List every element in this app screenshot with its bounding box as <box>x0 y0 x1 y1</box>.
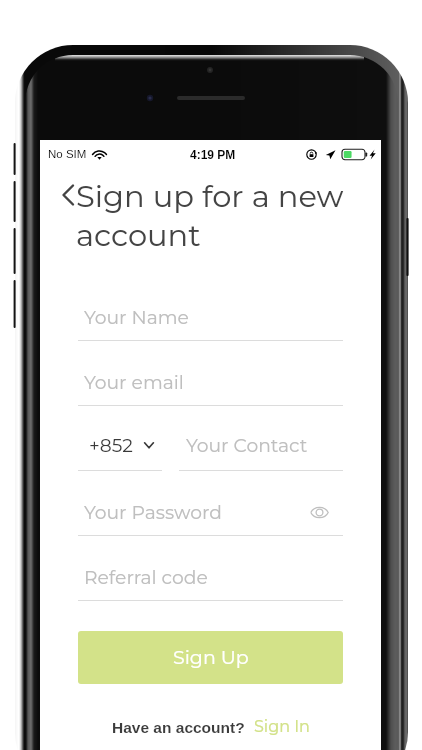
staticText: Your email <box>84 371 184 394</box>
staticText: Your Name <box>84 306 189 329</box>
staticText: Your Contact <box>186 434 308 457</box>
staticText: Sign up for a new account <box>76 177 356 254</box>
button[interactable]: Your email <box>78 369 343 406</box>
other: Show password <box>310 506 329 519</box>
button[interactable]: +852 <box>78 434 162 466</box>
staticText: Referral code <box>84 566 208 589</box>
staticText: +852 <box>89 434 133 457</box>
button[interactable]: Referral code <box>78 564 343 601</box>
staticText: Your Password <box>84 501 222 524</box>
button[interactable]: Your Name <box>78 304 343 341</box>
button[interactable]: Back <box>59 181 75 211</box>
staticText: 4:19 PM <box>190 148 236 161</box>
button[interactable]: Your Password <box>78 499 343 536</box>
button[interactable]: Your Contact <box>179 434 343 466</box>
staticText: Have an account? <box>112 719 245 736</box>
staticText: No SIM <box>48 148 87 161</box>
staticText: Sign In <box>254 717 310 737</box>
button[interactable]: Sign Up <box>78 631 343 684</box>
staticText: Sign Up <box>173 646 249 669</box>
button[interactable]: Sign In <box>254 717 310 737</box>
